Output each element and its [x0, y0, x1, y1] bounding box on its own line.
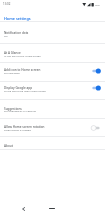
- staticText: 40%: [95, 3, 100, 6]
- button[interactable]: Display Google app: [0, 81, 105, 100]
- button[interactable]: Allow Home screen rotation: [0, 118, 105, 137]
- staticText: At the top of your Home screen: [4, 54, 41, 57]
- staticText: Notification dots: [4, 31, 29, 35]
- staticText: Add icon to Home screen: [4, 68, 41, 72]
- staticText: 13:02: [3, 2, 11, 6]
- staticText: For new apps: [4, 71, 20, 74]
- button[interactable]: Suggestions: [0, 100, 105, 119]
- button[interactable]: Notification dots: [0, 22, 105, 44]
- button[interactable]: Back: [18, 203, 29, 214]
- staticText: For Overview & All Apps list: [4, 109, 36, 112]
- button[interactable]: At A Glance: [0, 44, 105, 63]
- button[interactable]: Add icon to Home screen: [0, 63, 105, 81]
- staticText: Display Google app: [4, 86, 33, 90]
- button[interactable]: About: [0, 137, 105, 150]
- staticText: About: [4, 144, 13, 148]
- staticText: To the left of the main Home screen: [4, 89, 46, 92]
- button[interactable]: Home: [44, 203, 60, 214]
- staticText: On: [4, 34, 8, 37]
- staticText: At A Glance: [4, 51, 21, 55]
- staticText: Home settings: [4, 16, 31, 21]
- staticText: Allow Home screen rotation: [4, 125, 45, 129]
- staticText: When phone is rotated: [4, 128, 31, 131]
- staticText: Suggestions: [4, 107, 22, 111]
